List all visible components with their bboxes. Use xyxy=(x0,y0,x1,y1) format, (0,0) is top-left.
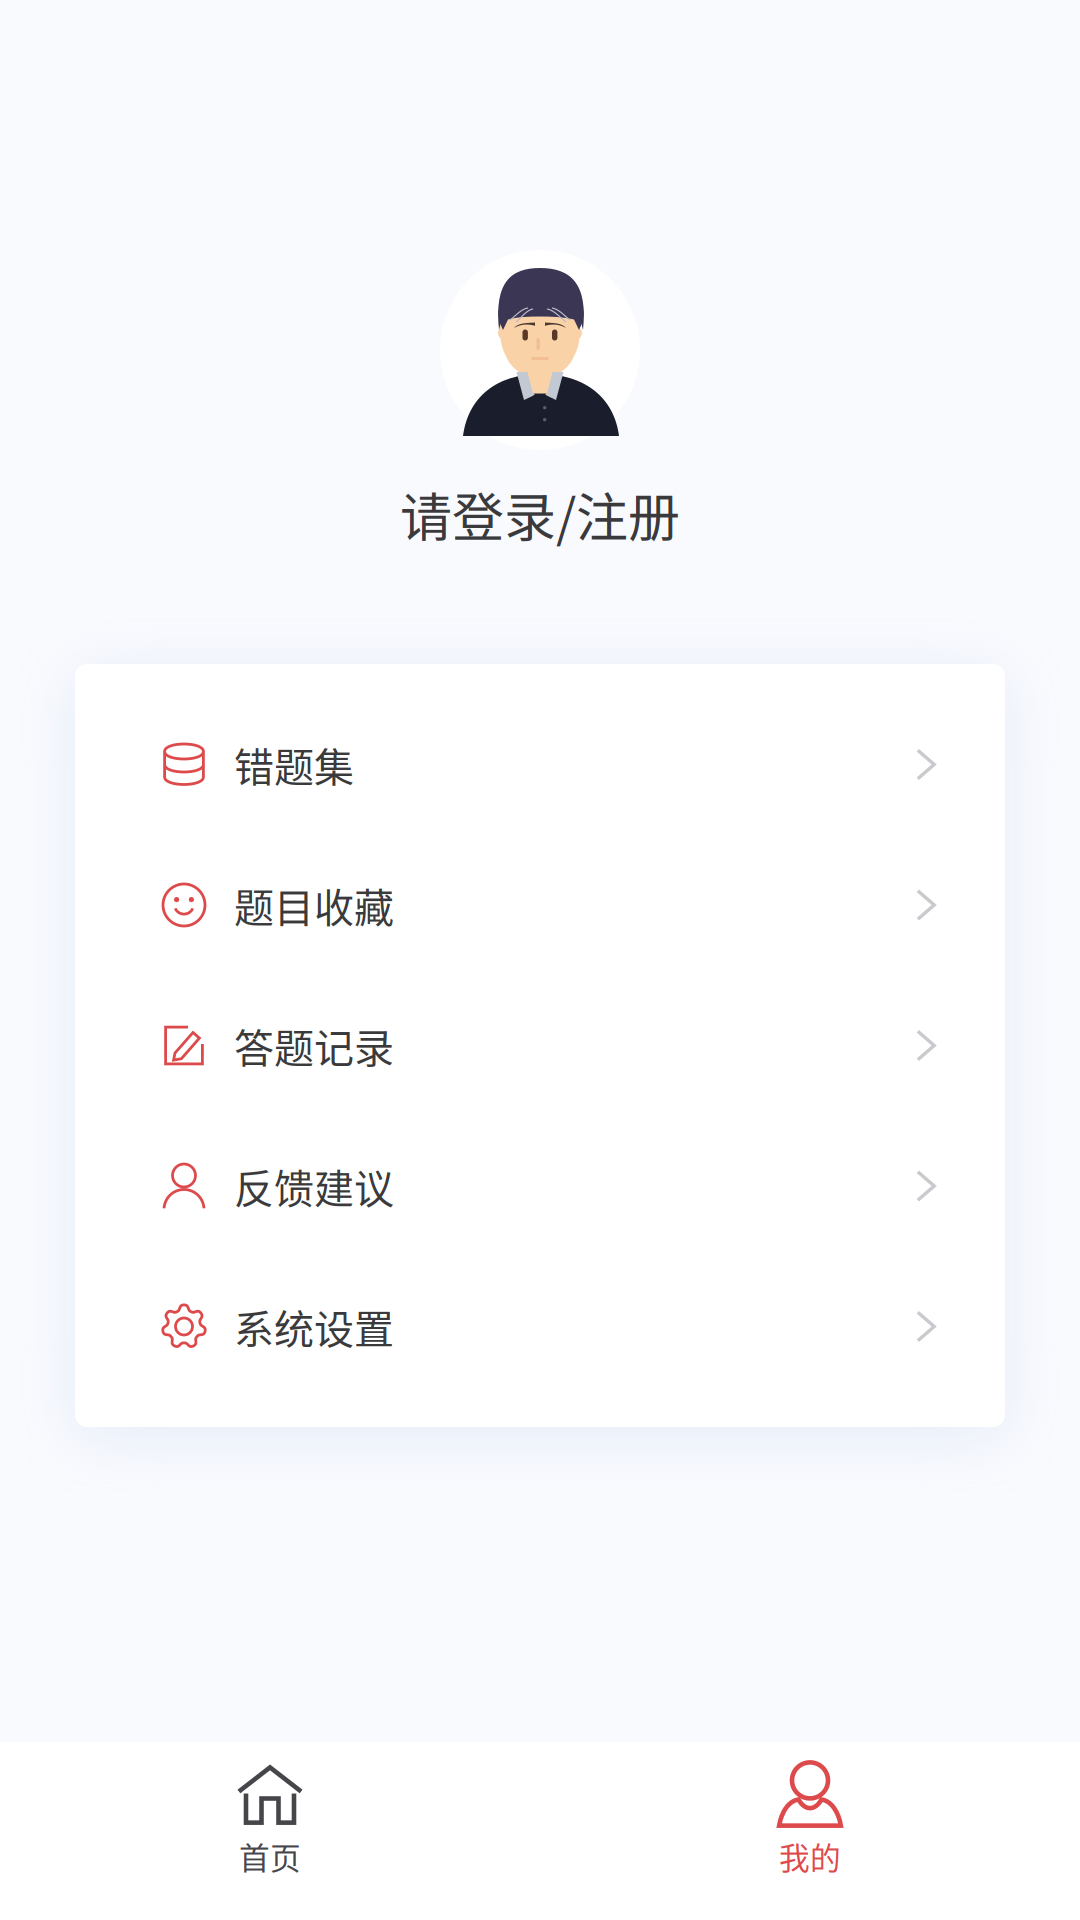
button[interactable]: 系统设置 xyxy=(0,1256,1080,1397)
staticText: 系统设置 xyxy=(234,1297,394,1355)
button[interactable]: 请登录/注册 xyxy=(0,250,1080,547)
staticText: 反馈建议 xyxy=(234,1157,394,1215)
button[interactable]: 首页 xyxy=(0,1765,540,1920)
button[interactable]: 我的 xyxy=(540,1760,1080,1920)
staticText: 答题记录 xyxy=(234,1016,394,1074)
button[interactable]: 答题记录 xyxy=(0,975,1080,1116)
staticText: 请登录/注册 xyxy=(400,476,680,552)
staticText: 首页 xyxy=(239,1834,301,1878)
button[interactable]: 题目收藏 xyxy=(0,835,1080,975)
staticText: 我的 xyxy=(779,1834,841,1878)
staticText: 题目收藏 xyxy=(234,876,394,934)
staticText: 错题集 xyxy=(234,735,354,793)
button[interactable]: 错题集 xyxy=(0,694,1080,835)
button[interactable]: 反馈建议 xyxy=(0,1116,1080,1256)
